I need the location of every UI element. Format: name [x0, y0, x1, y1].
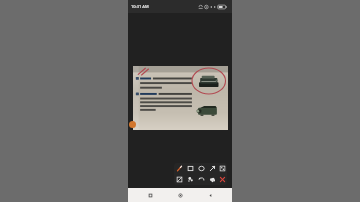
button[interactable]: Arrow	[207, 163, 218, 174]
button[interactable]: Recents	[142, 188, 158, 202]
button[interactable]	[133, 66, 228, 130]
button[interactable]: Crop	[174, 174, 185, 185]
button[interactable]: Ellipse	[196, 163, 207, 174]
button[interactable]: Undo	[196, 174, 207, 185]
button[interactable]: Delete	[218, 174, 227, 185]
button[interactable]: Home	[172, 188, 188, 202]
button[interactable]: Pen	[174, 163, 185, 174]
button[interactable]: Stamp	[185, 174, 196, 185]
button[interactable]: Move annotation handle	[129, 121, 136, 128]
button[interactable]: Back	[202, 188, 218, 202]
button[interactable]: Rectangle	[185, 163, 196, 174]
button[interactable]: Blur	[218, 163, 227, 174]
staticText: 10:31 AM	[131, 4, 149, 9]
button[interactable]: Fill	[207, 174, 218, 185]
